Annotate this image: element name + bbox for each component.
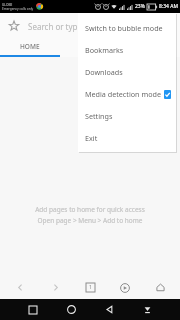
- button[interactable]: Forward: [40, 276, 70, 299]
- button[interactable]: Bookmark: [6, 18, 22, 34]
- button[interactable]: Back: [94, 299, 124, 320]
- button[interactable]: Recents: [18, 299, 48, 320]
- staticText: Add pages to home for quick access: [35, 205, 145, 214]
- staticText: Open page > Menu > Add to home: [37, 216, 143, 225]
- staticText: Downloads: [85, 67, 123, 77]
- staticText: Emergency calls only: [2, 7, 34, 11]
- button[interactable]: HOME: [0, 38, 60, 55]
- staticText: Exit: [85, 133, 98, 143]
- button[interactable]: Bookmarks: [78, 39, 176, 61]
- button[interactable]: Exit: [78, 127, 176, 149]
- staticText: Settings: [85, 111, 113, 121]
- staticText: Media detection mode: [85, 89, 161, 99]
- button[interactable]: Home: [56, 299, 86, 320]
- button[interactable]: Media detection mode: [78, 83, 176, 105]
- staticText: GLOBE: [2, 3, 13, 7]
- button[interactable]: Switch to bubble mode: [78, 17, 176, 39]
- button[interactable]: Back: [5, 276, 35, 299]
- button[interactable]: Media: [110, 276, 140, 299]
- staticText: Switch to bubble mode: [85, 23, 163, 33]
- button[interactable]: Tabs: [75, 276, 105, 299]
- staticText: 1: [89, 284, 92, 291]
- staticText: HOME: [20, 42, 40, 51]
- staticText: Search or type URL: [28, 21, 100, 32]
- button[interactable]: Hide keyboard: [132, 299, 162, 320]
- button[interactable]: Home: [145, 276, 175, 299]
- staticText: 8:34 AM: [159, 3, 178, 10]
- button[interactable]: Downloads: [78, 61, 176, 83]
- other: Media detection enabled: [164, 90, 171, 99]
- button[interactable]: Settings: [78, 105, 176, 127]
- button[interactable]: Search or type URL: [28, 16, 174, 36]
- staticText: Bookmarks: [85, 45, 124, 55]
- staticText: 23%: [135, 3, 145, 10]
